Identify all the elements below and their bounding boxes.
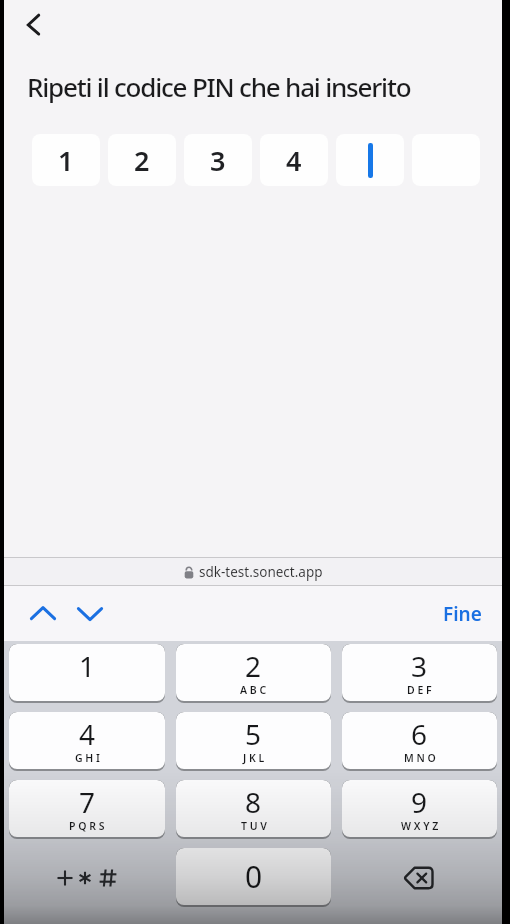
button[interactable] — [342, 848, 497, 907]
staticText: 8 — [245, 783, 262, 821]
button[interactable] — [336, 134, 404, 186]
staticText: 2 — [134, 142, 150, 179]
staticText: 9 — [411, 783, 428, 821]
button[interactable]: 8 — [176, 780, 331, 839]
staticText: Fine — [443, 601, 482, 627]
staticText: 1 — [58, 142, 74, 179]
button[interactable]: 2 — [108, 134, 176, 186]
button[interactable] — [9, 848, 165, 907]
staticText: A B C — [240, 683, 267, 697]
staticText: 4 — [286, 142, 302, 179]
staticText: G H I — [75, 751, 100, 765]
button[interactable]: 9 — [342, 780, 497, 839]
staticText: J K L — [243, 751, 265, 765]
staticText: 1 — [79, 647, 96, 685]
button[interactable]: 3 — [342, 644, 497, 703]
staticText: 0 — [245, 856, 263, 897]
button[interactable]: 5 — [176, 712, 331, 771]
staticText: T U V — [241, 819, 267, 833]
staticText: Ripeti il codice PIN che hai inserito — [27, 69, 411, 104]
button[interactable] — [28, 603, 58, 623]
staticText: 5 — [245, 715, 262, 753]
button[interactable]: 6 — [342, 712, 497, 771]
button[interactable]: 7 — [9, 780, 165, 839]
button[interactable]: 1 — [9, 644, 165, 703]
button[interactable]: sdk-test.sonect.app — [184, 563, 323, 581]
staticText: 3 — [411, 647, 428, 685]
button[interactable]: 4 — [260, 134, 328, 186]
button[interactable] — [24, 9, 46, 39]
button[interactable]: 0 — [176, 848, 331, 907]
button[interactable]: 4 — [9, 712, 165, 771]
button[interactable]: 1 — [32, 134, 100, 186]
staticText: 7 — [79, 783, 96, 821]
staticText: 2 — [245, 647, 262, 685]
button[interactable]: 3 — [184, 134, 252, 186]
staticText: P Q R S — [69, 819, 105, 833]
staticText: 3 — [210, 142, 226, 179]
staticText: sdk-test.sonect.app — [199, 563, 323, 581]
staticText: 6 — [411, 715, 428, 753]
staticText: 4 — [79, 715, 96, 753]
staticText: D E F — [407, 683, 432, 697]
button[interactable]: Fine — [439, 601, 486, 627]
staticText: M N O — [404, 751, 436, 765]
button[interactable]: 2 — [176, 644, 331, 703]
staticText: W X Y Z — [401, 819, 439, 833]
button[interactable] — [75, 603, 105, 623]
